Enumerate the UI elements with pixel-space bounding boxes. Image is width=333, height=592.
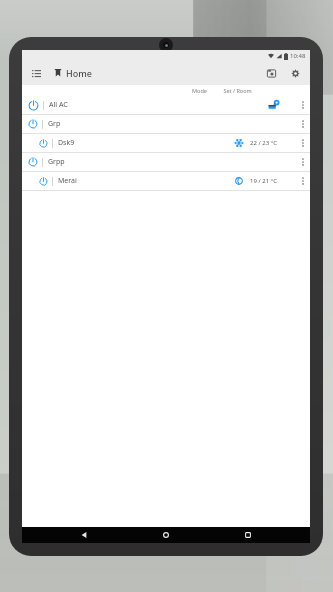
button[interactable]: Power All AC	[22, 96, 310, 114]
button[interactable]: More options for Dsk9	[296, 134, 310, 152]
button[interactable]: Screenshot	[262, 64, 280, 82]
button[interactable]: Settings	[286, 64, 304, 82]
staticText: 10:48	[290, 52, 306, 60]
staticText: All AC	[49, 100, 68, 110]
button[interactable]: Open navigation list	[28, 65, 44, 81]
staticText: Grp	[48, 119, 61, 129]
staticText: 22 / 23 °C	[250, 139, 278, 147]
button[interactable]: Power Grpp	[26, 155, 40, 169]
button[interactable]: Home	[146, 527, 186, 543]
button[interactable]: More options for Grp	[296, 115, 310, 133]
button[interactable]: Mode selector	[266, 97, 282, 113]
button[interactable]: Power Grp	[22, 115, 310, 133]
staticText: 19 / 21 °C	[250, 177, 278, 185]
button[interactable]: Power Dsk9	[37, 137, 50, 150]
button[interactable]: Power Grpp	[22, 153, 310, 171]
button[interactable]: More options for All AC	[296, 96, 310, 114]
staticText: Grpp	[48, 157, 65, 167]
button[interactable]: More options for Merai	[296, 172, 310, 190]
staticText: Dsk9	[58, 138, 75, 148]
button[interactable]: More options for Grpp	[296, 153, 310, 171]
button[interactable]: Power Merai	[37, 175, 50, 188]
staticText: Set / Room	[223, 87, 252, 94]
button[interactable]: Back	[64, 527, 104, 543]
button[interactable]: Recent apps	[228, 527, 268, 543]
staticText: Merai	[58, 176, 77, 186]
button[interactable]: Power Grp	[26, 117, 40, 131]
button[interactable]: Power All AC	[26, 98, 41, 113]
staticText: Home	[66, 67, 92, 79]
button[interactable]: Power Merai	[22, 172, 310, 190]
button[interactable]: Power Dsk9	[22, 134, 310, 152]
staticText: Mode	[192, 87, 207, 94]
